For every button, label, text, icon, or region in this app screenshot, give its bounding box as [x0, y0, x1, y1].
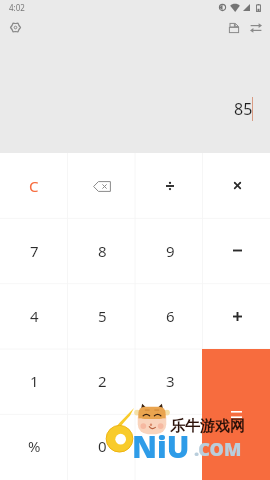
staticText: 8	[98, 241, 107, 261]
button[interactable]: Settings	[4, 16, 26, 38]
button[interactable]: Delete	[68, 153, 136, 218]
button[interactable]: 3	[136, 348, 204, 413]
button[interactable]: 9	[136, 218, 204, 283]
staticText: %	[28, 436, 41, 456]
staticText: 0	[98, 436, 107, 456]
button[interactable]: 4	[0, 283, 68, 348]
button[interactable]: .	[136, 413, 204, 478]
staticText: 85	[234, 98, 253, 120]
button[interactable]: 2	[68, 348, 136, 413]
staticText: 4:02	[9, 2, 25, 13]
staticText: .COM	[194, 437, 242, 462]
staticText: 7	[30, 241, 39, 261]
staticText: 1	[30, 371, 39, 391]
button[interactable]	[204, 283, 270, 348]
button[interactable]: 6	[136, 283, 204, 348]
button[interactable]	[136, 153, 204, 218]
staticText: 2	[98, 371, 107, 391]
staticText: NiU	[132, 426, 190, 467]
staticText: C	[29, 176, 39, 196]
button[interactable]: %	[0, 413, 68, 478]
staticText: .	[168, 436, 173, 456]
button[interactable]: 7	[0, 218, 68, 283]
button[interactable]: 8	[68, 218, 136, 283]
staticText: 6	[166, 306, 175, 326]
staticText: 9	[166, 241, 175, 261]
other: Delete	[91, 175, 113, 197]
staticText: 3	[166, 371, 175, 391]
staticText: 乐牛游戏网	[170, 417, 245, 436]
button[interactable]: C	[0, 153, 68, 218]
button[interactable]: History	[223, 17, 245, 39]
button[interactable]: 1	[0, 348, 68, 413]
button[interactable]	[204, 218, 270, 283]
button[interactable]: Equals	[202, 349, 270, 480]
button[interactable]	[204, 153, 270, 218]
button[interactable]: 5	[68, 283, 136, 348]
staticText: 5	[98, 306, 107, 326]
button[interactable]: Unit converter	[245, 17, 267, 39]
button[interactable]: 0	[68, 413, 136, 478]
staticText: 4	[30, 306, 39, 326]
